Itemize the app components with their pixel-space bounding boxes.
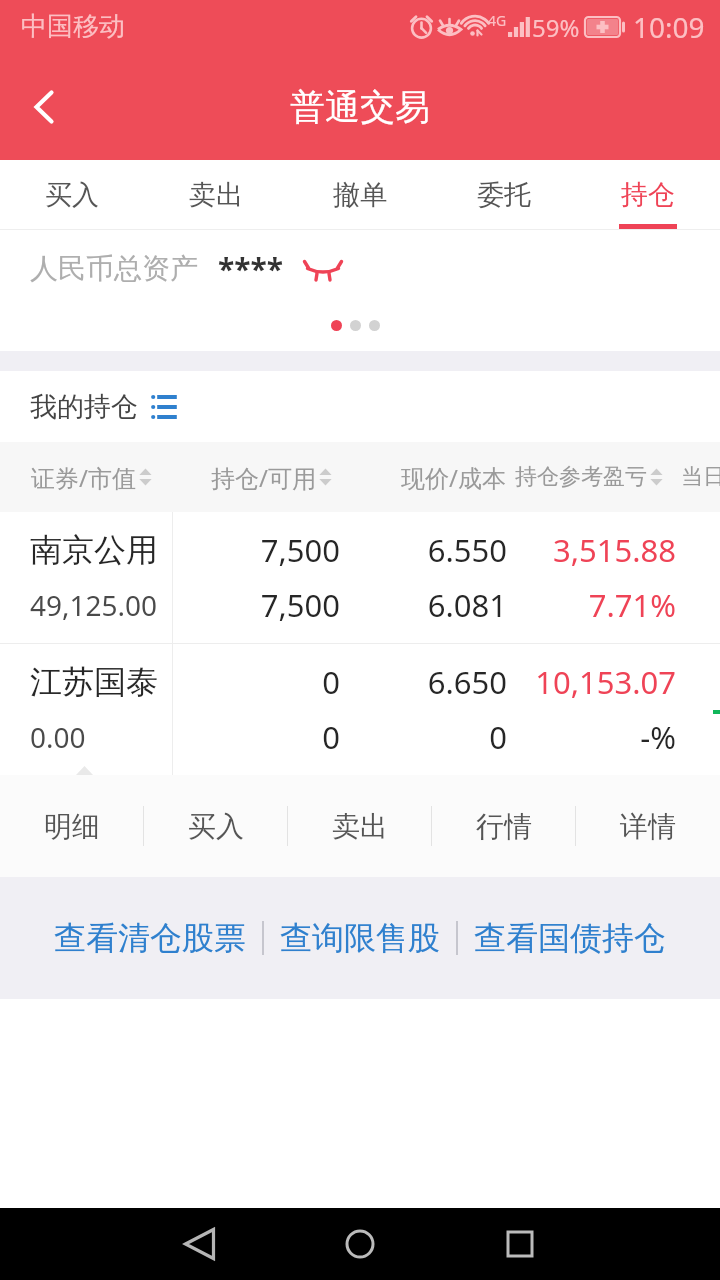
staticText: 0	[160, 716, 340, 758]
button[interactable]: 撤单	[288, 160, 432, 230]
staticText: 持仓/可用	[211, 461, 316, 494]
staticText: 4G	[488, 11, 507, 30]
button[interactable]: 委托	[432, 160, 576, 230]
staticText: 人民币总资产	[30, 251, 198, 286]
staticText: 7,500	[160, 529, 340, 571]
staticText: 我的持仓	[30, 390, 138, 424]
button[interactable]: 卖出	[144, 160, 288, 230]
button[interactable]: 详情	[576, 775, 720, 877]
staticText: 当日参考盈亏	[681, 463, 720, 491]
staticText: 10,153.07	[507, 661, 676, 703]
staticText: 查看清仓股票	[54, 918, 246, 958]
button[interactable]: 查看国债持仓	[458, 904, 682, 972]
button[interactable]: Sort list	[151, 393, 178, 421]
staticText: 49,125.00	[30, 586, 158, 624]
staticText: 南京公用	[30, 530, 158, 570]
staticText: 详情	[620, 809, 676, 844]
button[interactable]: Back	[160, 1208, 240, 1280]
button[interactable]: 买入	[0, 160, 144, 230]
staticText: -%	[507, 716, 676, 758]
button[interactable]: Home	[320, 1208, 400, 1280]
button[interactable]: 江苏国泰	[0, 644, 720, 775]
staticText: 卖出	[332, 809, 388, 844]
staticText: 7,500	[160, 584, 340, 626]
staticText: 3,515.88	[507, 529, 676, 571]
button[interactable]: 持仓	[576, 160, 720, 230]
staticText: 买入	[45, 178, 99, 212]
staticText: 6.650	[340, 661, 507, 703]
staticText: 卖出	[189, 178, 243, 212]
staticText: 证券/市值	[31, 461, 136, 494]
staticText: 查询限售股	[280, 918, 440, 958]
staticText: 10:09	[633, 8, 705, 46]
staticText: 持仓参考盈亏	[515, 463, 647, 491]
staticText: ****	[218, 248, 284, 289]
staticText: 中国移动	[21, 10, 125, 43]
button[interactable]: Show amount	[300, 252, 346, 286]
staticText: 撤单	[333, 178, 387, 212]
button[interactable]: 南京公用	[0, 512, 720, 643]
button[interactable]: 查询限售股	[264, 904, 456, 972]
staticText: 0	[340, 716, 507, 758]
staticText: 0	[160, 661, 340, 703]
staticText: 0.00	[30, 718, 86, 756]
staticText: 江苏国泰	[30, 662, 158, 702]
staticText: 买入	[188, 809, 244, 844]
staticText: 7.71%	[507, 584, 676, 626]
staticText: 查看国债持仓	[474, 918, 666, 958]
staticText: 持仓	[621, 178, 675, 212]
button[interactable]: 买入	[144, 775, 288, 877]
button[interactable]: 行情	[432, 775, 576, 877]
staticText: 普通交易	[290, 85, 430, 129]
button[interactable]: 明细	[0, 775, 144, 877]
staticText: 6.081	[340, 584, 507, 626]
staticText: 现价/成本	[401, 461, 506, 494]
staticText: 6.550	[340, 529, 507, 571]
button[interactable]: Recents	[480, 1208, 560, 1280]
staticText: 行情	[476, 809, 532, 844]
button[interactable]: 查看清仓股票	[38, 904, 262, 972]
staticText: 委托	[477, 178, 531, 212]
staticText: 明细	[44, 809, 100, 844]
button[interactable]: 卖出	[288, 775, 432, 877]
button[interactable]: Back	[0, 63, 88, 151]
staticText: 59%	[532, 11, 580, 44]
